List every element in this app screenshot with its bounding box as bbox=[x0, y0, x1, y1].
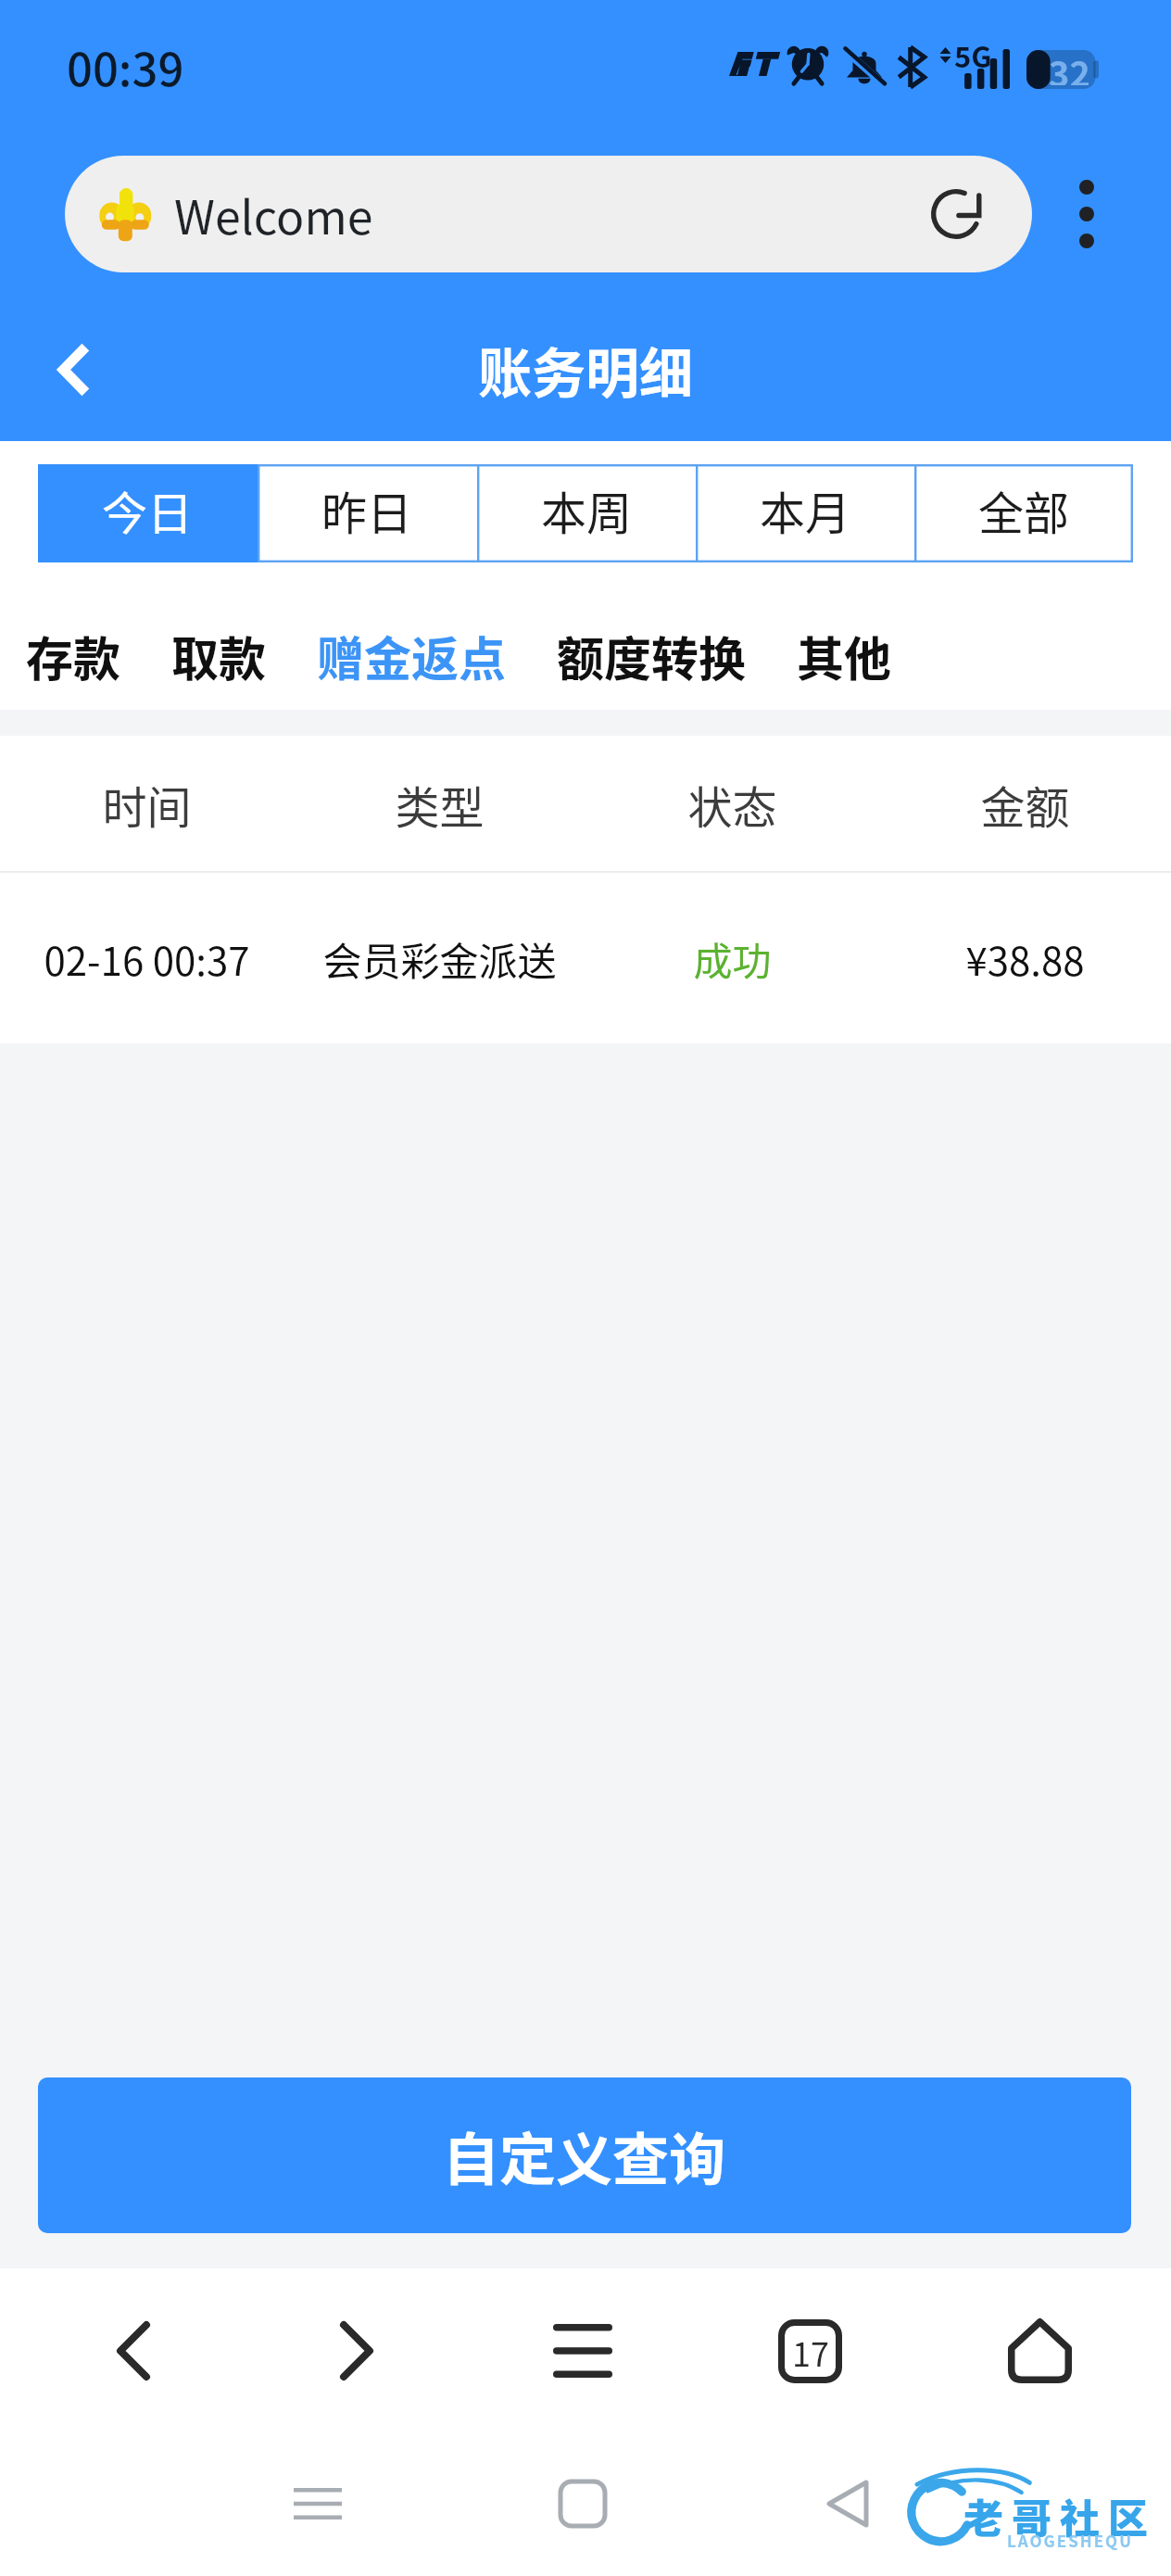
staticText: 其他 bbox=[797, 622, 892, 690]
staticText: 账务明细 bbox=[478, 331, 694, 409]
button[interactable]: Recent apps bbox=[271, 2457, 364, 2550]
staticText: 17 bbox=[792, 2328, 829, 2376]
staticText: 赠金返点 bbox=[317, 622, 507, 690]
button[interactable]: 其他 bbox=[797, 622, 942, 690]
staticText: 02-16 00:37 bbox=[44, 930, 250, 987]
staticText: 类型 bbox=[395, 772, 485, 837]
staticText: 本周 bbox=[541, 477, 633, 543]
button[interactable]: 取款 bbox=[171, 622, 317, 690]
button[interactable]: 本月 bbox=[696, 464, 914, 562]
staticText: 全部 bbox=[978, 477, 1070, 543]
staticText: 存款 bbox=[26, 622, 121, 690]
staticText: 老哥社区 bbox=[963, 2487, 1156, 2544]
staticText: 成功 bbox=[693, 930, 772, 987]
staticText: 取款 bbox=[171, 622, 267, 690]
button[interactable]: 自定义查询 bbox=[38, 2077, 1131, 2233]
staticText: 时间 bbox=[102, 772, 192, 837]
staticText: LAOGESHEQU bbox=[1007, 2529, 1133, 2552]
button[interactable]: Forward bbox=[292, 2286, 422, 2416]
staticText: 00:39 bbox=[67, 33, 184, 99]
staticText: 自定义查询 bbox=[443, 2115, 726, 2196]
button[interactable]: 昨日 bbox=[258, 464, 477, 562]
button[interactable]: Back bbox=[69, 2286, 198, 2416]
button[interactable]: 存款 bbox=[26, 622, 171, 690]
staticText: 昨日 bbox=[321, 477, 413, 543]
button[interactable]: Back bbox=[801, 2457, 894, 2550]
button[interactable]: Welcome bbox=[65, 156, 1032, 272]
button[interactable]: Back bbox=[33, 331, 111, 409]
button[interactable]: 额度转换 bbox=[557, 622, 797, 690]
staticText: 5G bbox=[954, 34, 992, 76]
button[interactable]: 全部 bbox=[914, 464, 1133, 562]
button[interactable]: More options bbox=[1045, 158, 1128, 271]
staticText: Welcome bbox=[174, 181, 373, 247]
button[interactable]: Tabs bbox=[745, 2286, 875, 2416]
button[interactable]: 赠金返点 bbox=[317, 622, 557, 690]
staticText: 金额 bbox=[980, 772, 1070, 837]
button[interactable]: Home bbox=[536, 2457, 629, 2550]
button[interactable]: Menu bbox=[518, 2286, 648, 2416]
staticText: ¥38.88 bbox=[965, 930, 1085, 987]
staticText: 状态 bbox=[687, 772, 777, 837]
button[interactable]: Home bbox=[975, 2286, 1104, 2416]
button[interactable]: 本周 bbox=[477, 464, 696, 562]
staticText: 今日 bbox=[102, 477, 194, 543]
button[interactable]: Reload page bbox=[921, 179, 991, 249]
staticText: 32 bbox=[1049, 46, 1090, 85]
staticText: 会员彩金派送 bbox=[322, 930, 557, 987]
button[interactable]: 今日 bbox=[38, 464, 258, 562]
staticText: 本月 bbox=[760, 477, 851, 543]
staticText: 额度转换 bbox=[557, 622, 747, 690]
